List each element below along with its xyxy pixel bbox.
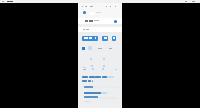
button[interactable]: Search (78, 18, 122, 24)
button[interactable]: Related search chip (102, 36, 108, 41)
button[interactable]: Google logo (83, 11, 86, 14)
button[interactable]: Filters (78, 27, 122, 32)
button[interactable]: Related search chip (112, 36, 116, 41)
button[interactable]: Related search chip (82, 36, 98, 41)
button[interactable]: Search by voice (114, 20, 117, 23)
button[interactable]: Window toolbar (0, 0, 200, 3)
